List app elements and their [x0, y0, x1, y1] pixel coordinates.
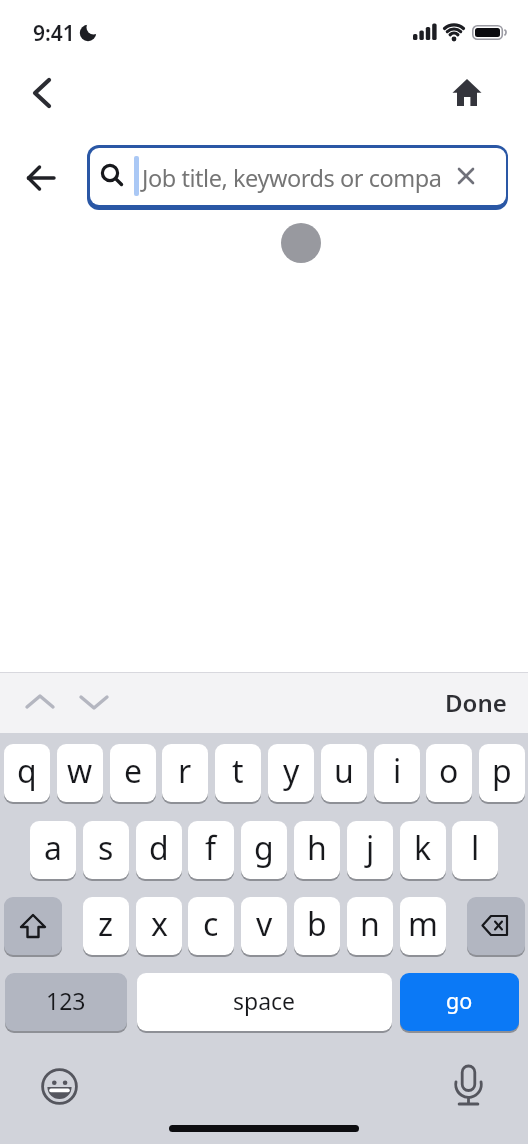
button[interactable] — [38, 1065, 81, 1108]
button[interactable]: v — [241, 897, 287, 955]
staticText: Job title, keywords or compa — [142, 162, 442, 194]
staticText: i — [393, 749, 402, 793]
button[interactable] — [446, 156, 486, 196]
staticText: b — [307, 902, 327, 946]
button[interactable]: b — [294, 897, 340, 955]
staticText: 123 — [46, 985, 86, 1016]
button[interactable]: u — [321, 744, 367, 802]
button[interactable]: n — [347, 897, 393, 955]
staticText: c — [203, 902, 219, 946]
button[interactable]: l — [452, 821, 498, 879]
button[interactable]: g — [241, 821, 287, 879]
staticText: f — [205, 826, 217, 870]
button[interactable] — [467, 897, 525, 955]
staticText: m — [408, 902, 438, 946]
staticText: space — [233, 985, 296, 1016]
staticText: t — [232, 749, 244, 793]
button[interactable] — [18, 156, 62, 200]
button[interactable]: q — [4, 744, 50, 802]
staticText: go — [446, 986, 473, 1015]
button[interactable]: f — [188, 821, 234, 879]
button[interactable]: d — [136, 821, 182, 879]
button[interactable]: j — [347, 821, 393, 879]
button[interactable]: r — [162, 744, 208, 802]
staticText: e — [124, 749, 143, 793]
button[interactable]: t — [215, 744, 261, 802]
button[interactable]: w — [57, 744, 103, 802]
staticText: j — [366, 826, 375, 870]
button[interactable] — [87, 145, 508, 210]
staticText: g — [254, 826, 274, 870]
button[interactable]: o — [426, 744, 472, 802]
button[interactable]: s — [83, 821, 129, 879]
button[interactable]: 123 — [5, 973, 127, 1031]
button[interactable]: i — [374, 744, 420, 802]
staticText: d — [149, 826, 169, 870]
button[interactable]: space — [137, 973, 392, 1031]
button[interactable]: go — [400, 973, 519, 1031]
staticText: r — [178, 749, 192, 793]
staticText: l — [471, 826, 480, 870]
staticText: q — [17, 749, 37, 793]
button[interactable]: x — [136, 897, 182, 955]
staticText: s — [98, 826, 114, 870]
staticText: y — [283, 749, 300, 793]
button[interactable]: p — [479, 744, 525, 802]
button[interactable]: k — [400, 821, 446, 879]
button[interactable]: c — [188, 897, 234, 955]
button[interactable]: z — [83, 897, 129, 955]
button[interactable]: y — [268, 744, 314, 802]
staticText: w — [67, 749, 93, 793]
staticText: o — [439, 749, 459, 793]
staticText: p — [492, 749, 512, 793]
button[interactable] — [22, 70, 66, 114]
staticText: a — [44, 826, 62, 870]
button[interactable] — [448, 1060, 488, 1110]
button[interactable]: e — [110, 744, 156, 802]
staticText: v — [256, 902, 273, 946]
staticText: z — [98, 902, 114, 946]
staticText: Done — [445, 686, 507, 719]
staticText: k — [414, 826, 432, 870]
button[interactable] — [76, 684, 112, 720]
staticText: h — [307, 826, 327, 870]
staticText: n — [360, 902, 380, 946]
button[interactable]: h — [294, 821, 340, 879]
button[interactable]: a — [30, 821, 76, 879]
button[interactable]: Done — [387, 678, 507, 726]
button[interactable]: m — [400, 897, 446, 955]
button[interactable] — [444, 70, 490, 116]
button[interactable] — [4, 897, 62, 955]
staticText: x — [151, 902, 168, 946]
button[interactable] — [22, 684, 58, 720]
staticText: 9:41 — [33, 19, 75, 48]
staticText: u — [334, 749, 354, 793]
